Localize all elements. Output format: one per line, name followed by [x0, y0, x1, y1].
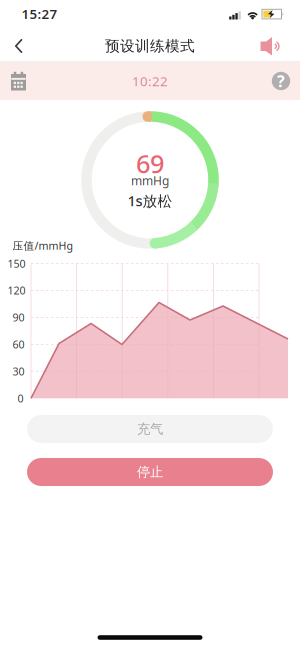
- staticText: 90: [12, 310, 24, 324]
- staticText: mmHg: [131, 172, 169, 188]
- button[interactable]: Help: [268, 68, 294, 94]
- staticText: 120: [7, 283, 25, 298]
- staticText: 150: [7, 256, 25, 271]
- staticText: 停止: [137, 464, 163, 480]
- staticText: 压值/mmHg: [12, 238, 73, 253]
- staticText: ?: [277, 70, 285, 92]
- staticText: 30: [12, 364, 24, 378]
- button[interactable]: 充气: [27, 415, 273, 443]
- staticText: 预设训练模式: [105, 37, 195, 55]
- button[interactable]: 停止: [27, 458, 273, 486]
- staticText: 60: [12, 337, 24, 351]
- staticText: 15:27: [21, 5, 57, 23]
- button[interactable]: Back: [4, 29, 32, 63]
- staticText: 充气: [137, 421, 163, 437]
- staticText: 0: [17, 391, 23, 405]
- button[interactable]: Sound: [254, 32, 290, 60]
- staticText: 10:22: [132, 72, 168, 90]
- button[interactable]: Calendar: [5, 65, 33, 95]
- staticText: 69: [136, 147, 164, 180]
- staticText: 1s放松: [127, 191, 172, 210]
